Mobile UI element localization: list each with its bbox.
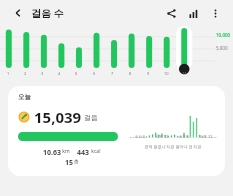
staticText: 9 [147, 71, 150, 76]
staticText: 오후 6 [179, 134, 190, 139]
staticText: 10.63 [43, 148, 61, 158]
staticText: kcal [90, 148, 101, 155]
staticText: 15,039 [34, 107, 82, 127]
staticText: 15 [65, 158, 74, 168]
staticText: 4 [58, 71, 61, 76]
staticText: 3 [41, 71, 44, 76]
staticText: 오후 12 [156, 134, 169, 139]
staticText: 걸음 수 [31, 6, 64, 20]
button[interactable]: More options [205, 3, 225, 23]
staticText: 10 [164, 71, 169, 76]
staticText: 걸음 [84, 113, 98, 122]
staticText: 언제 걸었나 지금 얼마나 걷 지금 [144, 144, 202, 149]
staticText: 443 [77, 148, 90, 158]
button[interactable]: 오늘 [8, 86, 225, 176]
staticText: 11 [182, 71, 187, 76]
button[interactable]: Share [161, 3, 181, 23]
button[interactable]: 1 [0, 26, 233, 82]
staticText: 10,000 [216, 32, 231, 38]
staticText: 오후 12 [200, 134, 213, 139]
staticText: 6 [93, 71, 96, 76]
staticText: 8 [129, 71, 132, 76]
staticText: 1 [7, 71, 10, 76]
staticText: 7 [111, 71, 114, 76]
staticText: km [61, 148, 70, 155]
staticText: 오전 6 [135, 134, 146, 139]
staticText: 층 [74, 158, 79, 164]
button[interactable]: Chart [183, 3, 203, 23]
button[interactable]: Back [8, 3, 28, 23]
staticText: 2 [24, 71, 27, 76]
staticText: 5 [75, 71, 78, 76]
staticText: 오늘 [18, 93, 31, 101]
staticText: 5,000 [216, 45, 228, 51]
